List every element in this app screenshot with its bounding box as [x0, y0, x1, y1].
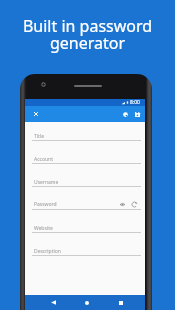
staticText: Website	[34, 225, 53, 232]
button[interactable]: Username	[32, 164, 141, 187]
staticText: Password	[34, 201, 57, 208]
button[interactable]: Website	[32, 210, 141, 233]
staticText: 8:00	[130, 99, 140, 106]
staticText: Description	[34, 248, 61, 255]
button[interactable]: Description	[32, 233, 141, 256]
button[interactable]: Save	[131, 108, 143, 120]
staticText: Title	[34, 133, 44, 140]
button[interactable]: Show password	[118, 200, 127, 209]
button[interactable]: Title	[32, 122, 141, 141]
button[interactable]: Back	[48, 297, 59, 308]
staticText: Account	[34, 156, 54, 163]
staticText: Built in password generator	[0, 15, 175, 53]
staticText: Username	[34, 179, 59, 186]
button[interactable]: Home	[81, 297, 92, 308]
button[interactable]: Choose colour	[119, 108, 131, 120]
button[interactable]: Recent apps	[115, 297, 126, 308]
button[interactable]: Generate password	[130, 200, 139, 209]
button[interactable]: Close	[30, 108, 42, 120]
button[interactable]: Account	[32, 141, 141, 164]
button[interactable]: Password	[32, 187, 141, 210]
